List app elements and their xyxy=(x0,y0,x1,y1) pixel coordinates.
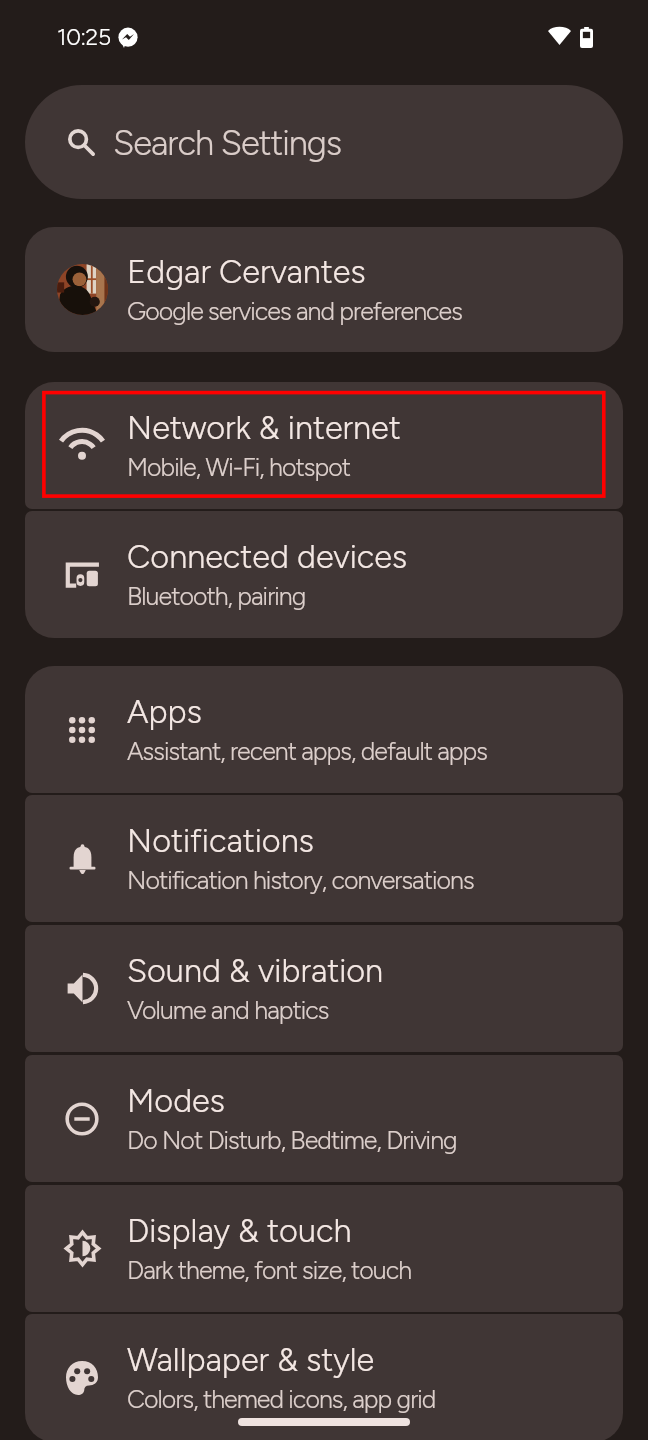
staticText: Do Not Disturb, Bedtime, Driving xyxy=(127,1125,457,1155)
other: Sound and vibration xyxy=(67,974,98,1003)
button[interactable]: Search xyxy=(25,85,623,199)
other: Network and internet xyxy=(63,431,101,460)
staticText: Volume and haptics xyxy=(127,995,329,1025)
staticText: Notification history, conversations xyxy=(127,865,474,895)
staticText: Mobile, Wi-Fi, hotspot xyxy=(127,452,350,482)
button[interactable]: Edgar Cervantes xyxy=(25,227,623,352)
staticText: Google services and preferences xyxy=(127,296,462,326)
staticText: Dark theme, font size, touch xyxy=(127,1255,412,1285)
staticText: Edgar Cervantes xyxy=(127,252,366,291)
staticText: Network & internet xyxy=(127,408,401,447)
other: Search xyxy=(68,129,95,156)
staticText: Display & touch xyxy=(127,1211,352,1250)
button[interactable]: Wallpaper and style xyxy=(25,1314,623,1440)
staticText: Modes xyxy=(127,1081,225,1120)
staticText: Notifications xyxy=(127,821,314,860)
staticText: Search Settings xyxy=(113,122,342,163)
other: Connected devices xyxy=(65,561,100,589)
button[interactable]: Apps xyxy=(25,666,623,793)
staticText: Colors, themed icons, app grid xyxy=(127,1384,436,1414)
button[interactable]: Sound and vibration xyxy=(25,925,623,1052)
staticText: Connected devices xyxy=(127,537,408,576)
staticText: 10:25 xyxy=(57,23,111,51)
staticText: Bluetooth, pairing xyxy=(127,581,306,611)
staticText: Apps xyxy=(127,692,202,731)
button[interactable]: Connected devices xyxy=(25,511,623,638)
other: Modes xyxy=(66,1103,98,1135)
staticText: Assistant, recent apps, default apps xyxy=(127,736,488,766)
button[interactable]: Modes xyxy=(25,1055,623,1182)
button[interactable]: Display and touch xyxy=(25,1185,623,1312)
other: Display and touch xyxy=(66,1232,99,1265)
other: Apps xyxy=(69,717,95,743)
other: Wallpaper and style xyxy=(66,1361,98,1395)
staticText: Sound & vibration xyxy=(127,951,384,990)
button[interactable]: Notifications xyxy=(25,795,623,922)
staticText: Wallpaper & style xyxy=(127,1340,375,1379)
other: Notifications xyxy=(69,843,96,875)
button[interactable]: Network and internet xyxy=(25,382,623,509)
